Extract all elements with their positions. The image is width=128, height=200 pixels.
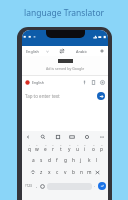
staticText: s bbox=[40, 157, 43, 164]
staticText: 8 bbox=[84, 143, 86, 146]
button[interactable]: m bbox=[85, 166, 93, 178]
staticText: x bbox=[48, 169, 51, 176]
staticText: u bbox=[76, 146, 79, 153]
button[interactable]: v bbox=[61, 166, 69, 178]
button[interactable]: Search bbox=[40, 134, 46, 140]
staticText: t bbox=[60, 146, 62, 153]
staticText: j bbox=[80, 157, 82, 164]
button[interactable]: g bbox=[61, 154, 69, 166]
staticText: r bbox=[52, 146, 54, 153]
button[interactable]: 8 bbox=[81, 142, 89, 154]
button[interactable]: Emoji bbox=[40, 184, 45, 189]
staticText: y bbox=[68, 146, 71, 153]
staticText: 0 bbox=[101, 143, 103, 146]
staticText: 3 bbox=[45, 143, 47, 146]
staticText: z bbox=[40, 169, 43, 176]
button[interactable]: GIF bbox=[69, 134, 75, 140]
button[interactable]: , bbox=[34, 179, 40, 193]
staticText: English bbox=[32, 80, 44, 85]
button[interactable]: Stickers bbox=[55, 134, 61, 140]
staticText: ?123 bbox=[25, 184, 32, 188]
button[interactable]: k bbox=[85, 154, 93, 166]
button[interactable]: a bbox=[29, 154, 37, 166]
staticText: 9 bbox=[93, 143, 95, 146]
staticText: . bbox=[94, 183, 96, 189]
button[interactable]: s bbox=[37, 154, 45, 166]
staticText: v bbox=[64, 169, 67, 176]
button[interactable]: Camera bbox=[100, 80, 105, 85]
button[interactable]: Translate bbox=[97, 92, 105, 100]
button[interactable]: z bbox=[37, 166, 45, 178]
staticText: 4 bbox=[52, 143, 54, 146]
button[interactable]: h bbox=[69, 154, 77, 166]
button[interactable]: l bbox=[93, 154, 101, 166]
staticText: language Translator bbox=[0, 7, 128, 19]
staticText: 5 bbox=[60, 143, 62, 146]
staticText: 6 bbox=[69, 143, 71, 146]
button[interactable]: Microphone bbox=[82, 80, 87, 85]
button[interactable]: j bbox=[77, 154, 85, 166]
button[interactable]: ?123 bbox=[23, 179, 34, 193]
staticText: 7 bbox=[77, 143, 79, 146]
button[interactable]: Handwriting bbox=[91, 80, 96, 85]
button[interactable]: 7 bbox=[73, 142, 81, 154]
button[interactable]: Arabic bbox=[76, 49, 88, 54]
staticText: f bbox=[56, 157, 58, 164]
button[interactable]: c bbox=[53, 166, 61, 178]
staticText: o bbox=[92, 146, 95, 153]
staticText: m bbox=[87, 169, 92, 176]
staticText: Arabic bbox=[76, 49, 88, 54]
button[interactable]: 6 bbox=[65, 142, 73, 154]
button[interactable]: 3 bbox=[41, 142, 49, 154]
staticText: q bbox=[28, 146, 31, 153]
staticText: g bbox=[64, 157, 67, 164]
staticText: a bbox=[32, 157, 35, 164]
button[interactable]: Swap languages bbox=[59, 48, 65, 54]
button[interactable]: Menu bbox=[25, 134, 31, 140]
staticText: w bbox=[35, 146, 39, 153]
staticText: p bbox=[100, 146, 103, 153]
button[interactable]: More bbox=[99, 134, 105, 140]
staticText: n bbox=[80, 169, 83, 176]
button[interactable]: Shift bbox=[28, 166, 37, 178]
staticText: i bbox=[84, 146, 86, 153]
button[interactable]: 0 bbox=[97, 142, 105, 154]
staticText: e bbox=[44, 146, 47, 153]
staticText: English bbox=[26, 49, 39, 54]
button[interactable]: 9 bbox=[89, 142, 97, 154]
button[interactable]: Settings bbox=[84, 134, 90, 140]
staticText: l bbox=[96, 157, 98, 164]
staticText: , bbox=[36, 183, 38, 189]
staticText: c bbox=[56, 169, 59, 176]
staticText: k bbox=[88, 157, 91, 164]
staticText: Tap to enter text bbox=[25, 93, 60, 99]
button[interactable]: d bbox=[45, 154, 53, 166]
button[interactable]: 4 bbox=[49, 142, 57, 154]
button[interactable]: b bbox=[69, 166, 77, 178]
button[interactable]: 1 bbox=[25, 142, 33, 154]
staticText: b bbox=[72, 169, 75, 176]
button[interactable]: x bbox=[45, 166, 53, 178]
staticText: h bbox=[72, 157, 75, 164]
button[interactable]: Add language bbox=[99, 48, 105, 54]
staticText: d bbox=[48, 157, 51, 164]
button[interactable]: Enter bbox=[98, 182, 106, 190]
button[interactable]: n bbox=[77, 166, 85, 178]
button[interactable]: . bbox=[92, 179, 98, 193]
button[interactable]: 2 bbox=[33, 142, 41, 154]
button[interactable]: 5 bbox=[57, 142, 65, 154]
staticText: 1 bbox=[29, 143, 31, 146]
staticText: 2 bbox=[36, 143, 38, 146]
button[interactable]: Backspace bbox=[93, 166, 102, 178]
button[interactable]: f bbox=[53, 154, 61, 166]
button[interactable]: English bbox=[26, 49, 49, 54]
staticText: Ad is served by Google bbox=[46, 66, 85, 71]
